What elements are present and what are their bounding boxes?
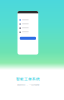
staticText: 高效协同 · 一站式管理 <box>17 83 39 86</box>
button[interactable] <box>17 11 38 55</box>
staticText: 智能工单系统 <box>16 76 40 82</box>
